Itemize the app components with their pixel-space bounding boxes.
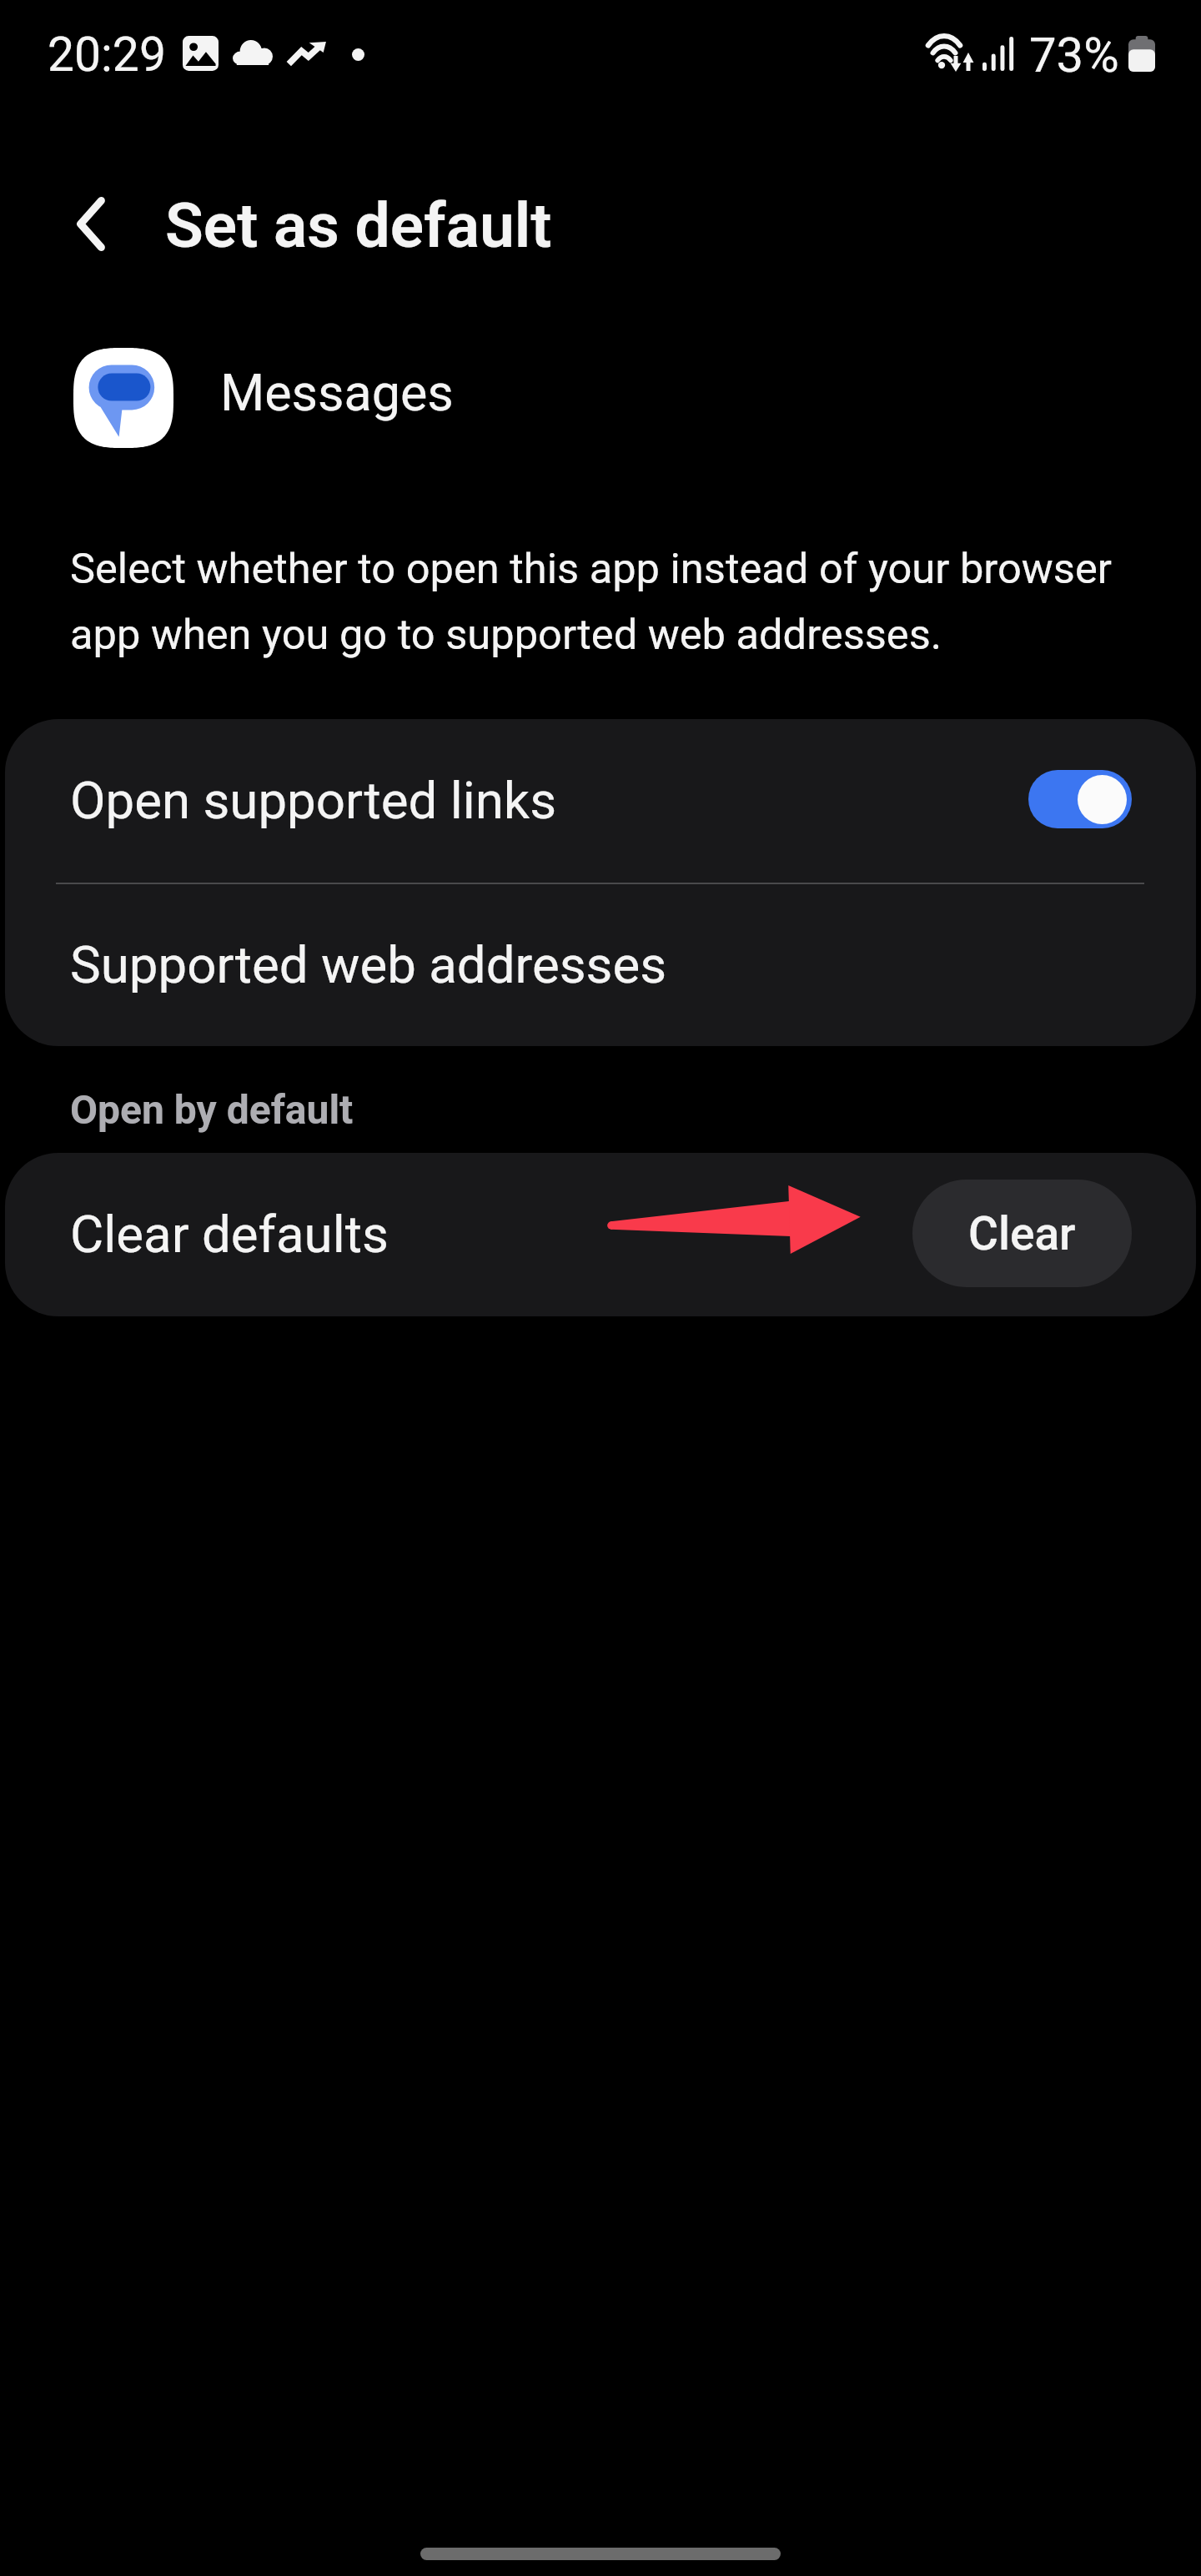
staticText: Set as default: [165, 189, 552, 262]
staticText: Clear: [968, 1207, 1076, 1260]
button[interactable]: Open supported links: [5, 719, 1196, 883]
button[interactable]: Clear: [912, 1180, 1132, 1287]
staticText: 73%: [1029, 27, 1119, 83]
button[interactable]: Supported web addresses: [5, 884, 1196, 1046]
staticText: Clear defaults: [70, 1205, 389, 1265]
button[interactable]: Clear defaults: [5, 1153, 1196, 1316]
staticText: Supported web addresses: [70, 935, 667, 995]
staticText: Messages: [220, 363, 454, 422]
staticText: 20:29: [48, 27, 166, 83]
button[interactable]: Back: [51, 184, 131, 264]
button[interactable]: Open supported links, on: [1028, 770, 1132, 828]
staticText: Select whether to open this app instead …: [70, 544, 1134, 659]
staticText: Open supported links: [70, 771, 1028, 831]
staticText: Open by default: [70, 1086, 354, 1133]
